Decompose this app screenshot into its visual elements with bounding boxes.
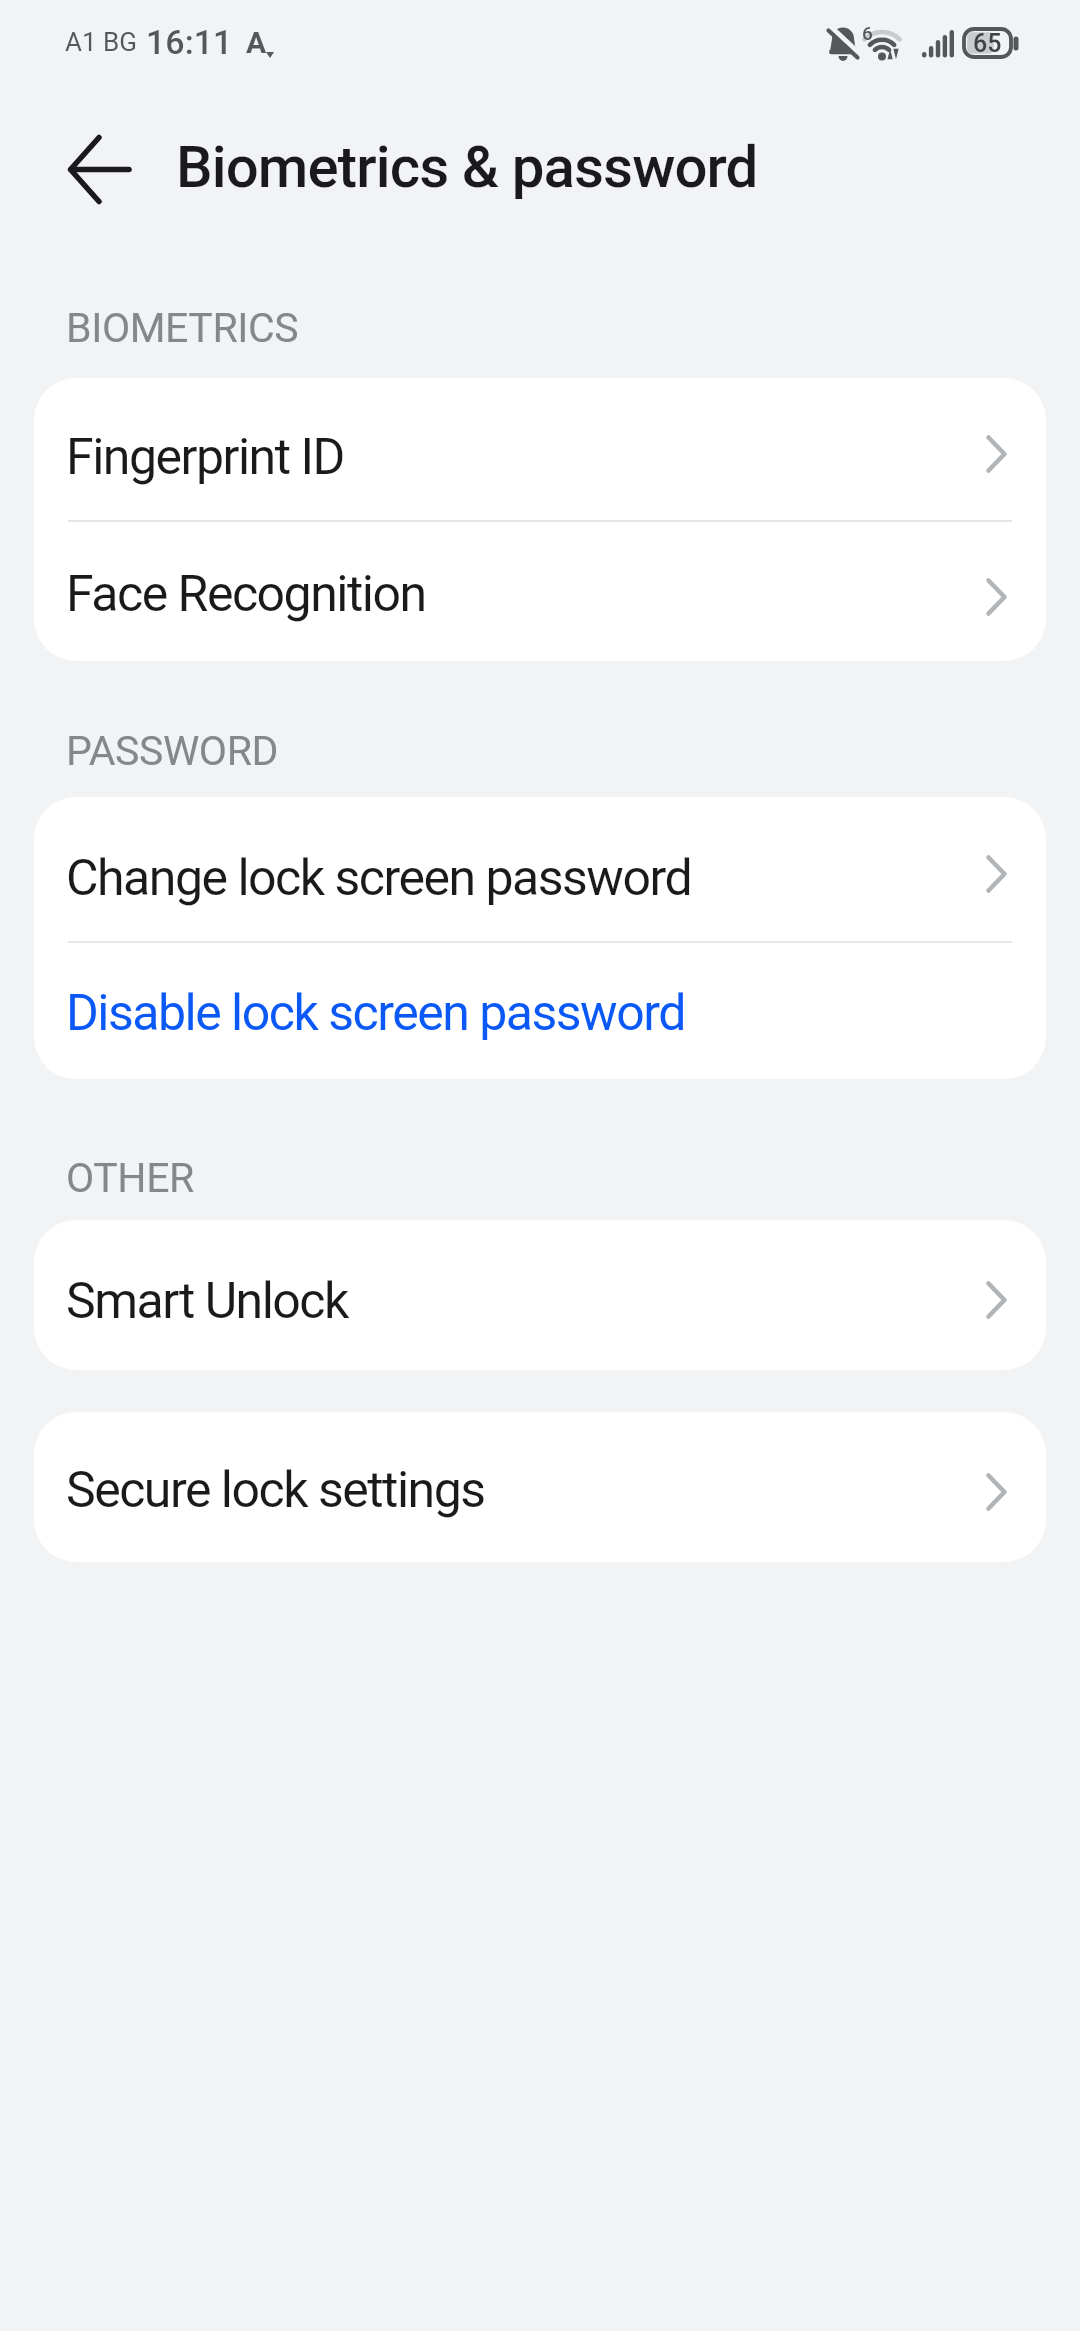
staticText: Change lock screen password <box>66 849 692 908</box>
button[interactable] <box>68 135 132 205</box>
staticText: Fingerprint ID <box>66 428 344 487</box>
button[interactable]: Disable lock screen password <box>34 943 1046 1079</box>
staticText: OTHER <box>66 1154 194 1202</box>
staticText: BIOMETRICS <box>66 304 299 352</box>
staticText: PASSWORD <box>66 727 279 775</box>
button[interactable]: Secure lock settings <box>34 1412 1046 1562</box>
staticText: Face Recognition <box>66 565 426 624</box>
staticText: 16:11 <box>146 22 233 62</box>
button[interactable]: Smart Unlock <box>34 1220 1046 1370</box>
staticText: A <box>246 25 267 59</box>
button[interactable]: Fingerprint ID <box>34 378 1046 520</box>
staticText: 65 <box>973 29 1002 57</box>
staticText: Secure lock settings <box>66 1461 485 1520</box>
staticText: Smart Unlock <box>66 1272 348 1331</box>
staticText: Biometrics & password <box>176 133 758 201</box>
button[interactable]: Change lock screen password <box>34 797 1046 941</box>
staticText: Disable lock screen password <box>66 984 685 1043</box>
button[interactable]: Face Recognition <box>34 522 1046 661</box>
staticText: 6 <box>862 22 873 44</box>
staticText: A1 BG <box>65 27 137 57</box>
